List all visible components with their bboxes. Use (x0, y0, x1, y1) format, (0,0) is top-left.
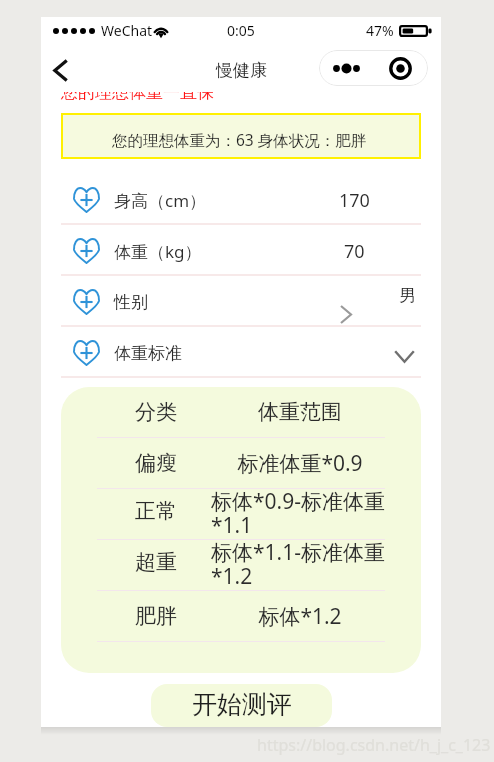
staticText: 0:05 (227, 21, 255, 40)
staticText: 您的理想体重为：63 身体状况：肥胖 (112, 129, 367, 150)
button[interactable]: 体重（kg） (41, 225, 441, 274)
staticText: 标体*0.9-标准体重*1.1 (211, 487, 388, 537)
staticText: 标体*1.1-标准体重*1.2 (211, 538, 388, 588)
staticText: 70 (344, 239, 365, 264)
staticText: 体重标准 (114, 343, 182, 364)
staticText: 标体*1.2 (258, 602, 342, 631)
button[interactable]: 身高（cm） (41, 174, 441, 223)
staticText: 开始测评 (192, 689, 292, 720)
button[interactable]: Back (41, 51, 79, 89)
staticText: 分类 (135, 399, 177, 425)
staticText: 标准体重*0.9 (237, 449, 363, 478)
button[interactable]: Close mini program (373, 50, 428, 86)
staticText: 肥胖 (135, 603, 177, 629)
staticText: 正常 (135, 498, 177, 524)
button[interactable]: 体重标准 (41, 327, 441, 376)
staticText: 170 (339, 188, 370, 213)
staticText: 体重范围 (258, 399, 342, 425)
staticText: 体重（kg） (114, 240, 202, 263)
button[interactable]: 性别 (41, 276, 441, 325)
staticText: 男 (399, 285, 416, 306)
staticText: 超重 (135, 549, 177, 575)
staticText: 身高（cm） (114, 189, 207, 212)
button[interactable]: 开始测评 (151, 684, 332, 727)
staticText: https://blog.csdn.net/h_j_c_123 (257, 734, 491, 756)
staticText: 47% (366, 21, 394, 40)
staticText: 偏瘦 (135, 450, 177, 476)
staticText: 性别 (114, 292, 148, 313)
staticText: 慢健康 (216, 60, 267, 81)
staticText: 您的理想体重一直保 (61, 82, 214, 103)
staticText: WeChat (101, 21, 153, 40)
button[interactable]: More options (319, 50, 373, 86)
